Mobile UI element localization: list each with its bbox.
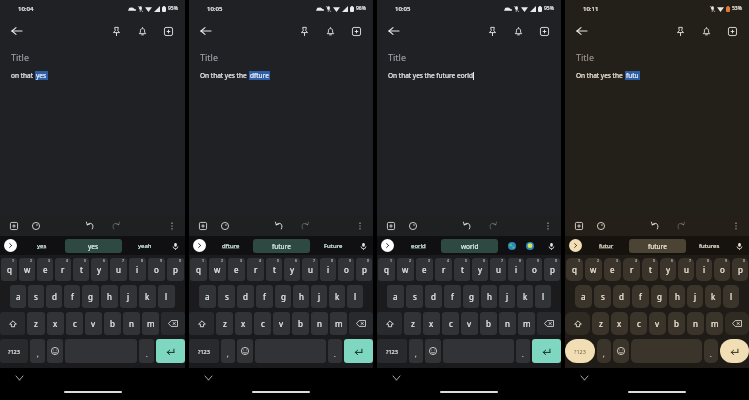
button[interactable]: Add (571, 218, 586, 233)
button[interactable]: future (629, 239, 686, 253)
button[interactable]: 9 (338, 258, 354, 281)
button[interactable]: 6 (284, 258, 300, 281)
button[interactable]: n (499, 312, 516, 335)
button[interactable]: 7 (490, 258, 506, 281)
button[interactable]: c (630, 312, 647, 335)
button[interactable]: Symbols (189, 339, 219, 363)
button[interactable]: 1 (378, 258, 395, 281)
button[interactable]: dfture (208, 236, 253, 255)
button[interactable]: Palette (593, 218, 608, 233)
button[interactable]: 4 (247, 258, 264, 281)
button[interactable]: a (575, 285, 592, 308)
button[interactable]: n (123, 312, 140, 335)
button[interactable]: Undo (83, 218, 98, 233)
button[interactable]: 0 (167, 258, 184, 281)
button[interactable]: h (101, 285, 118, 308)
button[interactable]: g (82, 285, 99, 308)
button[interactable]: 8 (696, 258, 712, 281)
button[interactable]: c (66, 312, 83, 335)
button[interactable]: Voice input (545, 240, 557, 252)
button[interactable]: Voice input (169, 240, 181, 252)
button[interactable]: 1 (566, 258, 583, 281)
button[interactable]: Reminder (508, 21, 528, 41)
button[interactable]: b (292, 312, 309, 335)
button[interactable]: 8 (320, 258, 336, 281)
button[interactable]: Hide keyboard (202, 371, 215, 384)
button[interactable]: Enter (532, 339, 561, 363)
button[interactable]: 5 (454, 258, 470, 281)
button[interactable]: Undo (460, 218, 475, 233)
button[interactable]: 7 (678, 258, 694, 281)
button[interactable]: 2 (19, 258, 35, 281)
button[interactable]: g (651, 285, 667, 308)
button[interactable]: a (387, 285, 404, 308)
button[interactable]: Backspace (725, 312, 749, 335)
button[interactable]: yeah (122, 236, 168, 255)
button[interactable]: yes (19, 236, 65, 255)
button[interactable]: j (499, 285, 515, 308)
button[interactable]: , (221, 339, 235, 363)
button[interactable]: b (104, 312, 121, 335)
button[interactable]: . (516, 339, 530, 363)
button[interactable]: Emoji (47, 339, 63, 363)
button[interactable]: Voice input (357, 240, 369, 252)
button[interactable]: b (480, 312, 497, 335)
button[interactable]: g (275, 285, 291, 308)
button[interactable]: , (30, 339, 45, 363)
button[interactable]: Voice input (733, 240, 745, 252)
button[interactable]: future (253, 239, 310, 253)
button[interactable]: Shift (565, 312, 590, 335)
button[interactable]: l (723, 285, 739, 308)
button[interactable]: 3 (37, 258, 53, 281)
button[interactable]: k (705, 285, 721, 308)
button[interactable]: 6 (91, 258, 108, 281)
button[interactable]: Earth emoji (508, 242, 516, 250)
button[interactable]: More options (540, 218, 555, 233)
button[interactable]: Shift (0, 312, 25, 335)
button[interactable]: 4 (435, 258, 452, 281)
button[interactable]: x (423, 312, 440, 335)
button[interactable]: Back (572, 21, 592, 41)
button[interactable]: v (649, 312, 666, 335)
button[interactable]: Undo (648, 218, 663, 233)
button[interactable]: 2 (585, 258, 602, 281)
button[interactable]: k (517, 285, 533, 308)
button[interactable]: Add (6, 218, 21, 233)
button[interactable]: x (47, 312, 64, 335)
button[interactable]: Expand suggestions (381, 239, 394, 252)
button[interactable]: n (687, 312, 704, 335)
button[interactable]: Backspace (537, 312, 561, 335)
button[interactable]: c (254, 312, 271, 335)
button[interactable]: 0 (356, 258, 372, 281)
button[interactable]: 5 (642, 258, 658, 281)
button[interactable]: Future (310, 236, 356, 255)
button[interactable]: Shift (377, 312, 402, 335)
button[interactable]: 8 (129, 258, 146, 281)
button[interactable]: g (463, 285, 479, 308)
button[interactable]: yes (65, 239, 122, 253)
button[interactable]: z (404, 312, 421, 335)
button[interactable]: a (10, 285, 26, 308)
button[interactable]: l (158, 285, 175, 308)
button[interactable]: l (535, 285, 551, 308)
button[interactable]: Palette (28, 218, 43, 233)
button[interactable]: x (611, 312, 628, 335)
button[interactable]: Archive (534, 21, 554, 41)
button[interactable]: v (461, 312, 478, 335)
button[interactable]: Archive (346, 21, 366, 41)
button[interactable]: f (64, 285, 80, 308)
button[interactable]: futures (686, 236, 732, 255)
button[interactable]: n (311, 312, 328, 335)
button[interactable]: m (330, 312, 347, 335)
button[interactable]: world (441, 239, 498, 253)
button[interactable]: , (409, 339, 423, 363)
button[interactable]: More options (728, 218, 743, 233)
button[interactable]: f (256, 285, 273, 308)
button[interactable]: Expand suggestions (569, 239, 582, 252)
button[interactable]: s (594, 285, 611, 308)
button[interactable]: 2 (397, 258, 414, 281)
button[interactable]: Enter (344, 339, 373, 363)
